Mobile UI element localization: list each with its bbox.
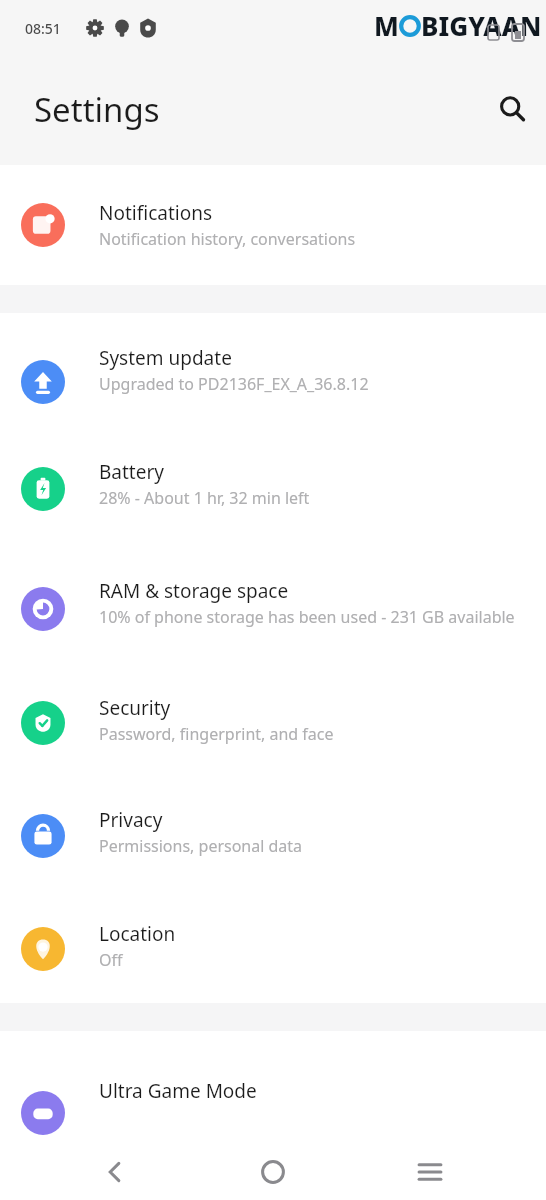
button[interactable]: Privacy [0,775,546,889]
button[interactable]: RAM & storage space [0,541,546,665]
staticText: Off [99,949,123,971]
button[interactable]: Notifications [0,165,546,285]
button[interactable]: Security [0,665,546,775]
staticText: Upgraded to PD2136F_EX_A_36.8.12 [99,373,369,395]
staticText: Ultra Game Mode [99,1078,257,1104]
staticText: Settings [34,87,160,132]
staticText: Notification history, conversations [99,228,356,250]
staticText: Privacy [99,807,163,833]
staticText: Security [99,695,171,721]
staticText: Battery [99,459,164,485]
button[interactable]: Search settings [483,80,541,138]
staticText: BIGYAAN [421,8,542,43]
staticText: Permissions, personal data [99,835,303,857]
button[interactable]: Home [246,1145,300,1199]
button[interactable]: Battery [0,427,546,541]
staticText: 08:51 [25,19,61,38]
button[interactable]: Location [0,889,546,1003]
staticText: System update [99,345,232,371]
staticText: Password, fingerprint, and face [99,723,334,745]
button[interactable]: Back [88,1145,142,1199]
button[interactable]: System update [0,313,546,427]
staticText: RAM & storage space [99,578,289,604]
staticText: 28% - About 1 hr, 32 min left [99,487,310,509]
button[interactable]: Ultra Game Mode [0,1031,546,1151]
staticText: 10% of phone storage has been used - 231… [99,606,515,628]
staticText: Notifications [99,200,213,226]
staticText: M [374,8,399,43]
button[interactable]: Recent apps [403,1145,457,1199]
staticText: Location [99,921,176,947]
